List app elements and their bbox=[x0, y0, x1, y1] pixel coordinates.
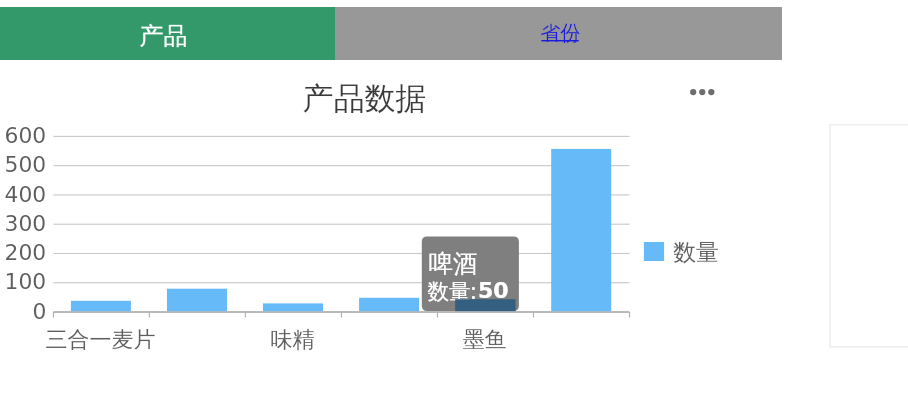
button[interactable]: 产品 bbox=[0, 7, 335, 60]
button[interactable]: 数量 legend bbox=[640, 236, 728, 266]
button[interactable]: More options bbox=[678, 76, 722, 109]
button[interactable]: 省份 bbox=[335, 7, 782, 60]
